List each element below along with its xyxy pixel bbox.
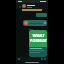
- button[interactable]: [22, 4, 26, 8]
- staticText: WHAT: [32, 33, 45, 38]
- staticText: FORMAT: [30, 38, 47, 43]
- button[interactable]: Back: [17, 4, 22, 9]
- button[interactable]: WHAT: [29, 30, 47, 57]
- button[interactable]: [24, 20, 46, 26]
- button[interactable]: [36, 13, 47, 17]
